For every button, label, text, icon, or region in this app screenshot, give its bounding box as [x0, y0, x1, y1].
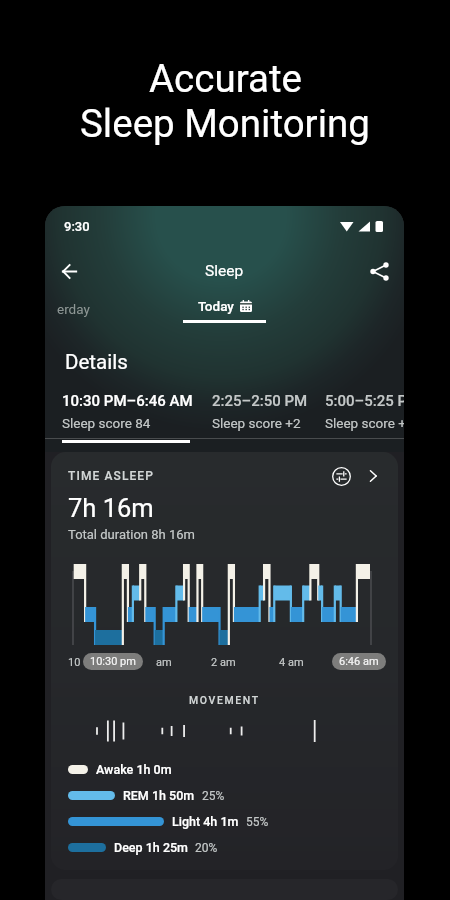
staticText: 5:00–5:25 P [325, 392, 404, 410]
staticText: MOVEMENT [189, 694, 260, 706]
button[interactable]: Awake 1h 0m [68, 762, 172, 777]
staticText: 7h 16m [68, 493, 154, 523]
button[interactable]: Share [360, 252, 398, 290]
button[interactable]: REM 1h 50m [68, 788, 225, 803]
staticText: 20% [195, 841, 218, 855]
staticText: 2 am [211, 656, 236, 669]
staticText: 10 [68, 656, 81, 669]
staticText: REM 1h 50m [123, 788, 195, 803]
staticText: 9:30 [64, 219, 90, 234]
button[interactable]: Back [50, 252, 88, 290]
staticText: Sleep [205, 262, 244, 280]
button[interactable]: 10:30 PM–6:46 AM [62, 392, 212, 443]
button[interactable]: Today [198, 298, 252, 314]
button[interactable]: 5:00–5:25 P [325, 392, 404, 431]
button[interactable]: Open details [361, 464, 385, 488]
staticText: Total duration 8h 16m [68, 527, 195, 542]
staticText: Light 4h 1m [172, 814, 239, 829]
staticText: Details [65, 350, 128, 374]
button[interactable]: Deep 1h 25m [68, 840, 218, 855]
staticText: Deep 1h 25m [114, 840, 188, 855]
button[interactable]: TIME ASLEEP [51, 452, 398, 870]
staticText: 55% [246, 815, 269, 829]
staticText: Sleep score +2 [212, 415, 301, 431]
staticText: Sleep score + [325, 415, 404, 431]
staticText: Awake 1h 0m [96, 762, 172, 777]
button[interactable]: 2:25–2:50 PM [212, 392, 325, 431]
staticText: Today [198, 298, 234, 314]
staticText: TIME ASLEEP [68, 469, 155, 483]
button[interactable]: erday [57, 301, 90, 317]
staticText: 4 am [279, 656, 304, 669]
staticText: erday [57, 301, 90, 317]
button[interactable]: Adjust [329, 464, 353, 488]
staticText: 6:46 am [339, 655, 379, 668]
staticText: 10:30 pm [90, 655, 136, 668]
button[interactable]: Light 4h 1m [68, 814, 269, 829]
staticText: Sleep score 84 [62, 415, 151, 431]
staticText: am [156, 656, 172, 669]
staticText: Sleep Monitoring [80, 101, 370, 146]
staticText: 2:25–2:50 PM [212, 392, 308, 410]
staticText: 25% [202, 789, 225, 803]
staticText: 10:30 PM–6:46 AM [62, 392, 193, 410]
staticText: Accurate [149, 56, 302, 101]
